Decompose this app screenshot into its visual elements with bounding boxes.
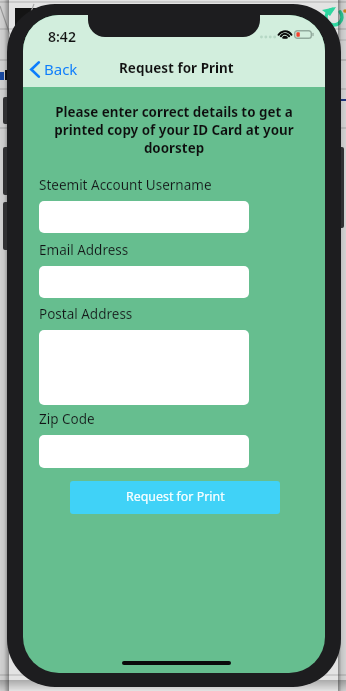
button[interactable] [39,330,249,405]
button[interactable] [39,201,249,233]
staticText: Zip Code [39,410,95,428]
button[interactable]: Back [26,56,82,82]
staticText: 8:42 [48,27,76,46]
button[interactable] [39,435,249,468]
staticText: Email Address [39,241,129,259]
button[interactable] [39,266,249,298]
staticText: Postal Address [39,305,133,323]
staticText: Request for Print [119,59,234,77]
staticText: Request for Print [126,488,225,505]
staticText: Steemit Account Username [39,176,212,194]
button[interactable]: Request for Print [70,481,280,514]
staticText: Please enter correct details to get a pr… [38,103,310,157]
staticText: Back [44,59,78,79]
